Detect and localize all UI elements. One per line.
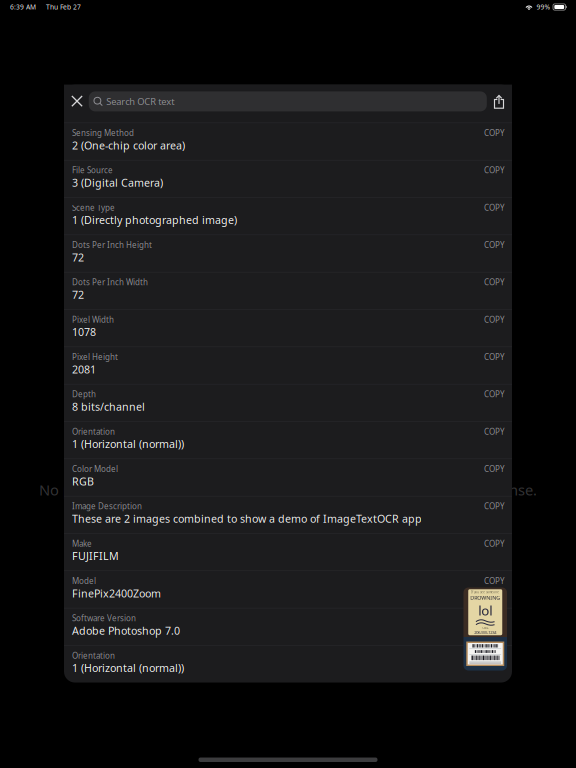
staticText: COPY xyxy=(484,165,505,175)
staticText: File Source xyxy=(72,165,113,175)
staticText: COPY xyxy=(484,613,505,623)
staticText: Scene Type xyxy=(72,202,115,213)
staticText: Pixel Width xyxy=(72,314,114,325)
staticText: 72 xyxy=(72,250,84,264)
staticText: Model xyxy=(72,576,96,586)
staticText: Search OCR text xyxy=(106,95,174,108)
staticText: If you see someone xyxy=(471,590,499,594)
staticText: Thu Feb 27 xyxy=(46,3,81,11)
staticText: 99% xyxy=(536,3,550,11)
staticText: Image Description xyxy=(72,501,142,511)
staticText: COPY xyxy=(484,426,505,437)
staticText: COPY xyxy=(484,389,505,399)
button[interactable]: File Source xyxy=(64,160,512,197)
button[interactable]: Software Version xyxy=(64,608,512,645)
button[interactable]: Sensing Method xyxy=(64,123,512,160)
staticText: Color Model xyxy=(72,464,118,474)
button[interactable]: Color Model xyxy=(64,459,512,496)
button[interactable]: Dots Per Inch Height xyxy=(64,235,512,272)
button[interactable]: Image Description xyxy=(64,496,512,533)
staticText: COPY xyxy=(484,277,505,287)
staticText: COPY xyxy=(484,128,505,138)
button[interactable]: Model xyxy=(64,571,512,608)
button[interactable]: Dots Per Inch Width xyxy=(64,272,512,309)
button[interactable]: Share xyxy=(487,90,510,113)
staticText: 1078 xyxy=(72,325,96,339)
staticText: Orientation xyxy=(72,650,115,661)
staticText: These are 2 images combined to show a de… xyxy=(72,511,422,526)
button[interactable]: Pixel Height xyxy=(64,347,512,384)
staticText: COPY xyxy=(484,576,505,586)
staticText: 2 (One-chip color area) xyxy=(72,138,185,152)
button[interactable]: Close xyxy=(65,90,88,113)
staticText: 8 bits/channel xyxy=(72,399,145,414)
staticText: Dots Per Inch Height xyxy=(72,240,152,250)
button[interactable]: Pixel Width xyxy=(64,310,512,347)
staticText: Software Version xyxy=(72,613,136,623)
staticText: FUJIFILM xyxy=(72,549,119,563)
button[interactable]: Orientation xyxy=(64,646,512,682)
staticText: No photos selected. Tap the photo icon t… xyxy=(39,480,537,499)
staticText: Orientation xyxy=(72,426,115,437)
staticText: Make xyxy=(72,538,92,549)
button[interactable]: Make xyxy=(64,534,512,570)
button[interactable]: Depth xyxy=(64,384,512,421)
staticText: 6:39 AM xyxy=(10,3,36,11)
staticText: FinePix2400Zoom xyxy=(72,586,161,600)
staticText: COPY xyxy=(484,538,505,549)
staticText: Depth xyxy=(72,389,96,399)
staticText: CALL xyxy=(482,626,488,629)
staticText: COPY xyxy=(484,240,505,250)
button[interactable]: Orientation xyxy=(64,422,512,458)
staticText: COPY xyxy=(484,464,505,474)
staticText: 206-555-1234 xyxy=(474,630,496,635)
staticText: Sensing Method xyxy=(72,128,134,138)
staticText: Dots Per Inch Width xyxy=(72,277,148,287)
staticText: 3 (Digital Camera) xyxy=(72,176,163,190)
staticText: 2081 xyxy=(72,362,96,376)
staticText: COPY xyxy=(484,501,505,511)
staticText: Adobe Photoshop 7.0 xyxy=(72,623,180,638)
button[interactable]: Scene Type xyxy=(64,198,512,235)
staticText: 1 (Horizontal (normal)) xyxy=(72,437,184,451)
staticText: COPY xyxy=(484,314,505,325)
staticText: 72 xyxy=(72,287,84,302)
staticText: RGB xyxy=(72,474,94,488)
staticText: 1 (Horizontal (normal)) xyxy=(72,661,184,675)
staticText: 1 (Directly photographed image) xyxy=(72,213,237,227)
staticText: DROWNING xyxy=(470,594,500,601)
staticText: COPY xyxy=(484,650,505,661)
staticText: lol xyxy=(478,601,492,619)
staticText: COPY xyxy=(484,352,505,362)
staticText: Pixel Height xyxy=(72,352,118,362)
staticText: COPY xyxy=(484,202,505,213)
